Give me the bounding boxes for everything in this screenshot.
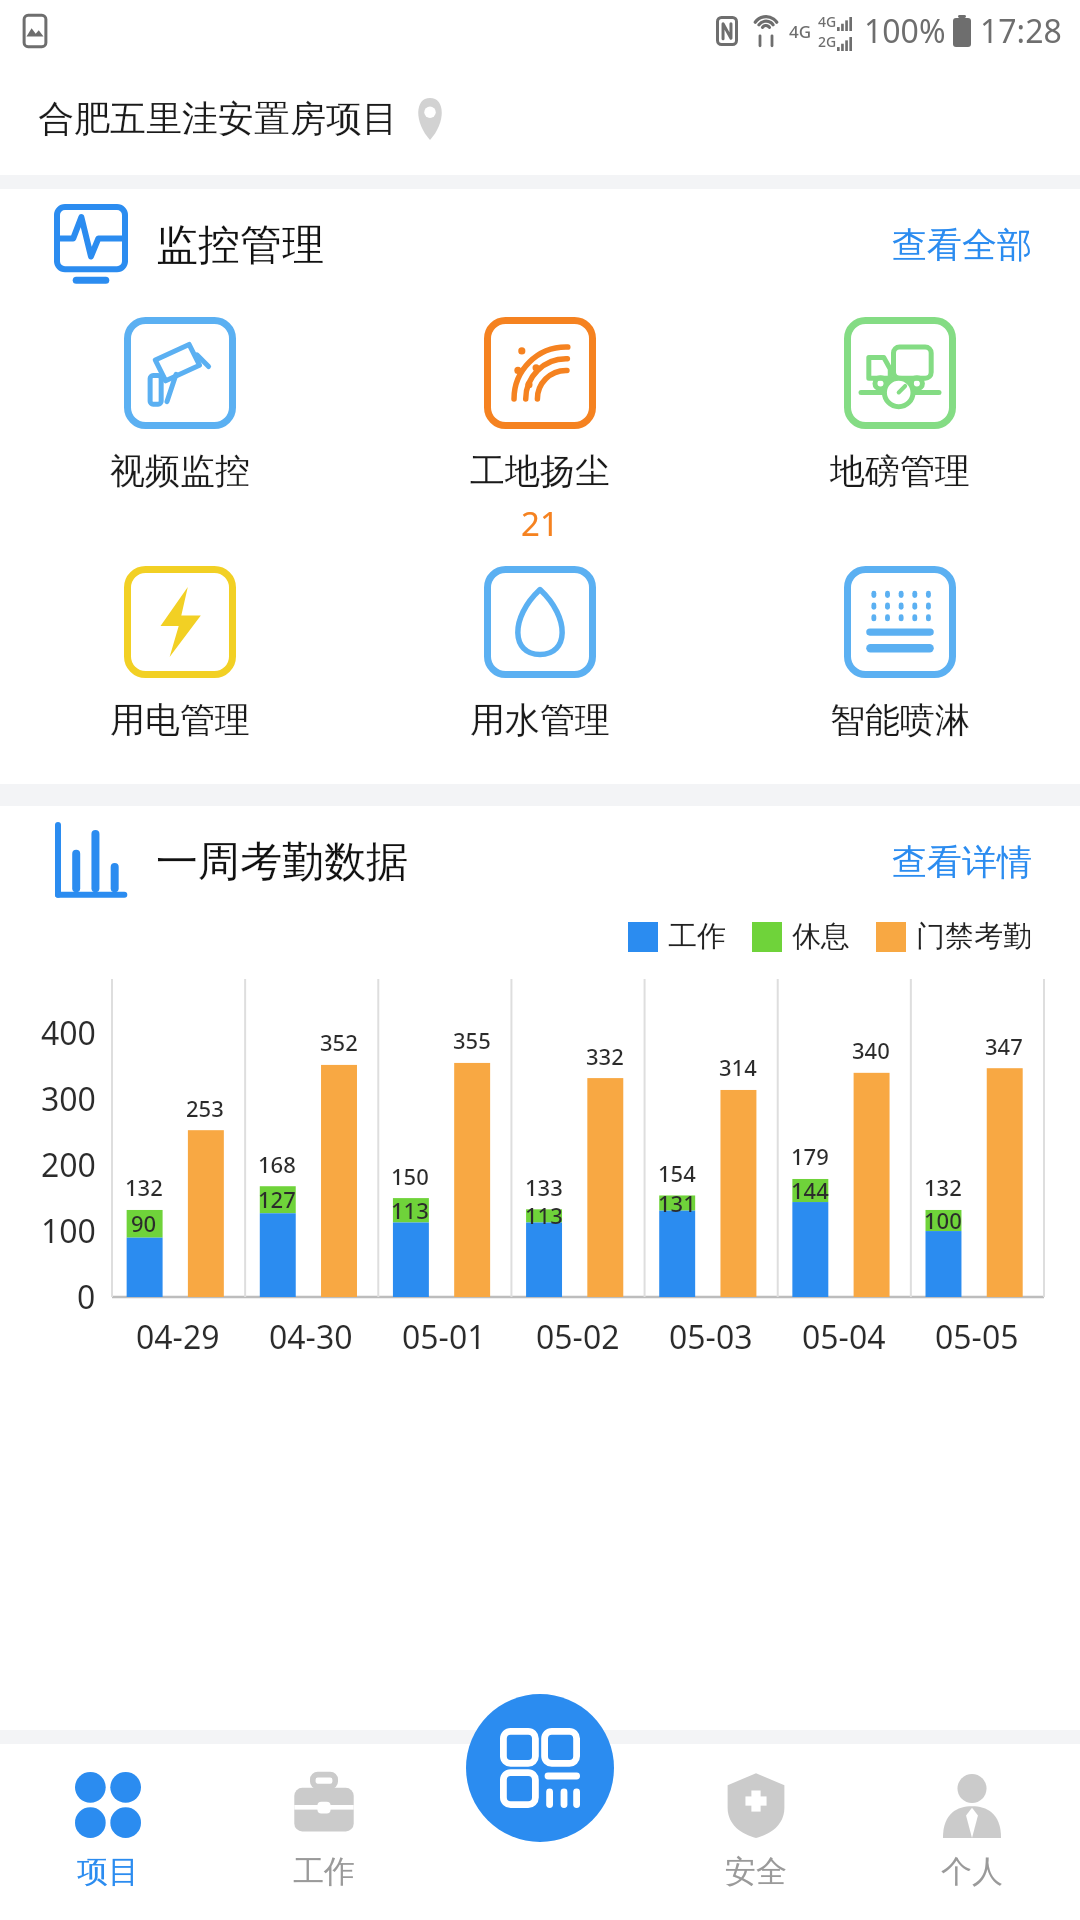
- staticText: 132: [125, 1172, 163, 1202]
- button[interactable]: 安全: [648, 1744, 864, 1920]
- staticText: 332: [586, 1041, 624, 1071]
- staticText: 132: [924, 1172, 962, 1202]
- staticText: 314: [719, 1052, 757, 1082]
- staticText: 127: [258, 1184, 296, 1214]
- staticText: 4G: [789, 20, 812, 43]
- staticText: 355: [453, 1025, 491, 1055]
- staticText: 项目: [77, 1852, 139, 1891]
- staticText: 工作: [668, 918, 726, 955]
- button[interactable]: 工地扬尘: [360, 311, 720, 552]
- button[interactable]: 个人: [864, 1744, 1080, 1920]
- staticText: 90: [131, 1208, 157, 1238]
- staticText: 253: [186, 1093, 224, 1123]
- staticText: 133: [525, 1172, 563, 1202]
- staticText: 查看详情: [892, 840, 1032, 884]
- staticText: 查看全部: [892, 223, 1032, 267]
- staticText: 179: [791, 1141, 829, 1171]
- button[interactable]: 地磅管理: [720, 311, 1080, 499]
- button[interactable]: 智能喷淋: [720, 560, 1080, 748]
- staticText: 17:28: [980, 9, 1062, 53]
- staticText: 05-02: [536, 1315, 620, 1359]
- button[interactable]: 工作: [216, 1744, 432, 1920]
- staticText: 用水管理: [470, 698, 610, 742]
- staticText: 视频监控: [110, 449, 250, 493]
- button[interactable]: 用电管理: [0, 560, 360, 748]
- staticText: 地磅管理: [830, 449, 970, 493]
- staticText: 400: [41, 1011, 96, 1055]
- staticText: 05-03: [669, 1315, 753, 1359]
- staticText: 监控管理: [156, 219, 324, 272]
- staticText: 门禁考勤: [916, 918, 1032, 955]
- staticText: 05-04: [802, 1315, 886, 1359]
- staticText: 工作: [293, 1852, 355, 1891]
- staticText: 05-05: [935, 1315, 1019, 1359]
- staticText: 154: [658, 1158, 696, 1188]
- staticText: 工地扬尘: [470, 449, 610, 493]
- staticText: 131: [658, 1188, 696, 1218]
- staticText: 05-01: [402, 1315, 486, 1359]
- staticText: 100%: [864, 9, 946, 53]
- staticText: 150: [391, 1161, 429, 1191]
- staticText: 100: [41, 1209, 96, 1253]
- staticText: 113: [391, 1195, 429, 1225]
- staticText: 安全: [725, 1852, 787, 1891]
- staticText: 个人: [941, 1852, 1003, 1891]
- staticText: 352: [320, 1027, 358, 1057]
- staticText: 113: [525, 1200, 563, 1230]
- staticText: 200: [41, 1143, 96, 1187]
- staticText: 21: [521, 501, 559, 546]
- button[interactable]: 查看全部: [886, 217, 1038, 273]
- staticText: 300: [41, 1077, 96, 1121]
- staticText: 100: [924, 1205, 962, 1235]
- staticText: 168: [258, 1149, 296, 1179]
- staticText: 智能喷淋: [830, 698, 970, 742]
- staticText: 用电管理: [110, 698, 250, 742]
- staticText: 347: [985, 1031, 1023, 1061]
- staticText: 144: [791, 1175, 829, 1205]
- button[interactable]: 项目: [0, 1744, 216, 1920]
- button[interactable]: 扫一扫: [466, 1694, 614, 1842]
- staticText: 4G: [818, 12, 837, 31]
- button[interactable]: 用水管理: [360, 560, 720, 748]
- staticText: 合肥五里洼安置房项目: [38, 96, 398, 141]
- staticText: 0: [77, 1275, 96, 1319]
- button[interactable]: 视频监控: [0, 311, 360, 499]
- staticText: 04-29: [136, 1315, 220, 1359]
- staticText: 休息: [792, 918, 850, 955]
- staticText: 340: [852, 1035, 890, 1065]
- staticText: 2G: [818, 32, 837, 51]
- staticText: 04-30: [269, 1315, 353, 1359]
- button[interactable]: 合肥五里洼安置房项目: [0, 62, 1080, 175]
- staticText: 一周考勤数据: [156, 836, 408, 889]
- button[interactable]: 查看详情: [886, 834, 1038, 890]
